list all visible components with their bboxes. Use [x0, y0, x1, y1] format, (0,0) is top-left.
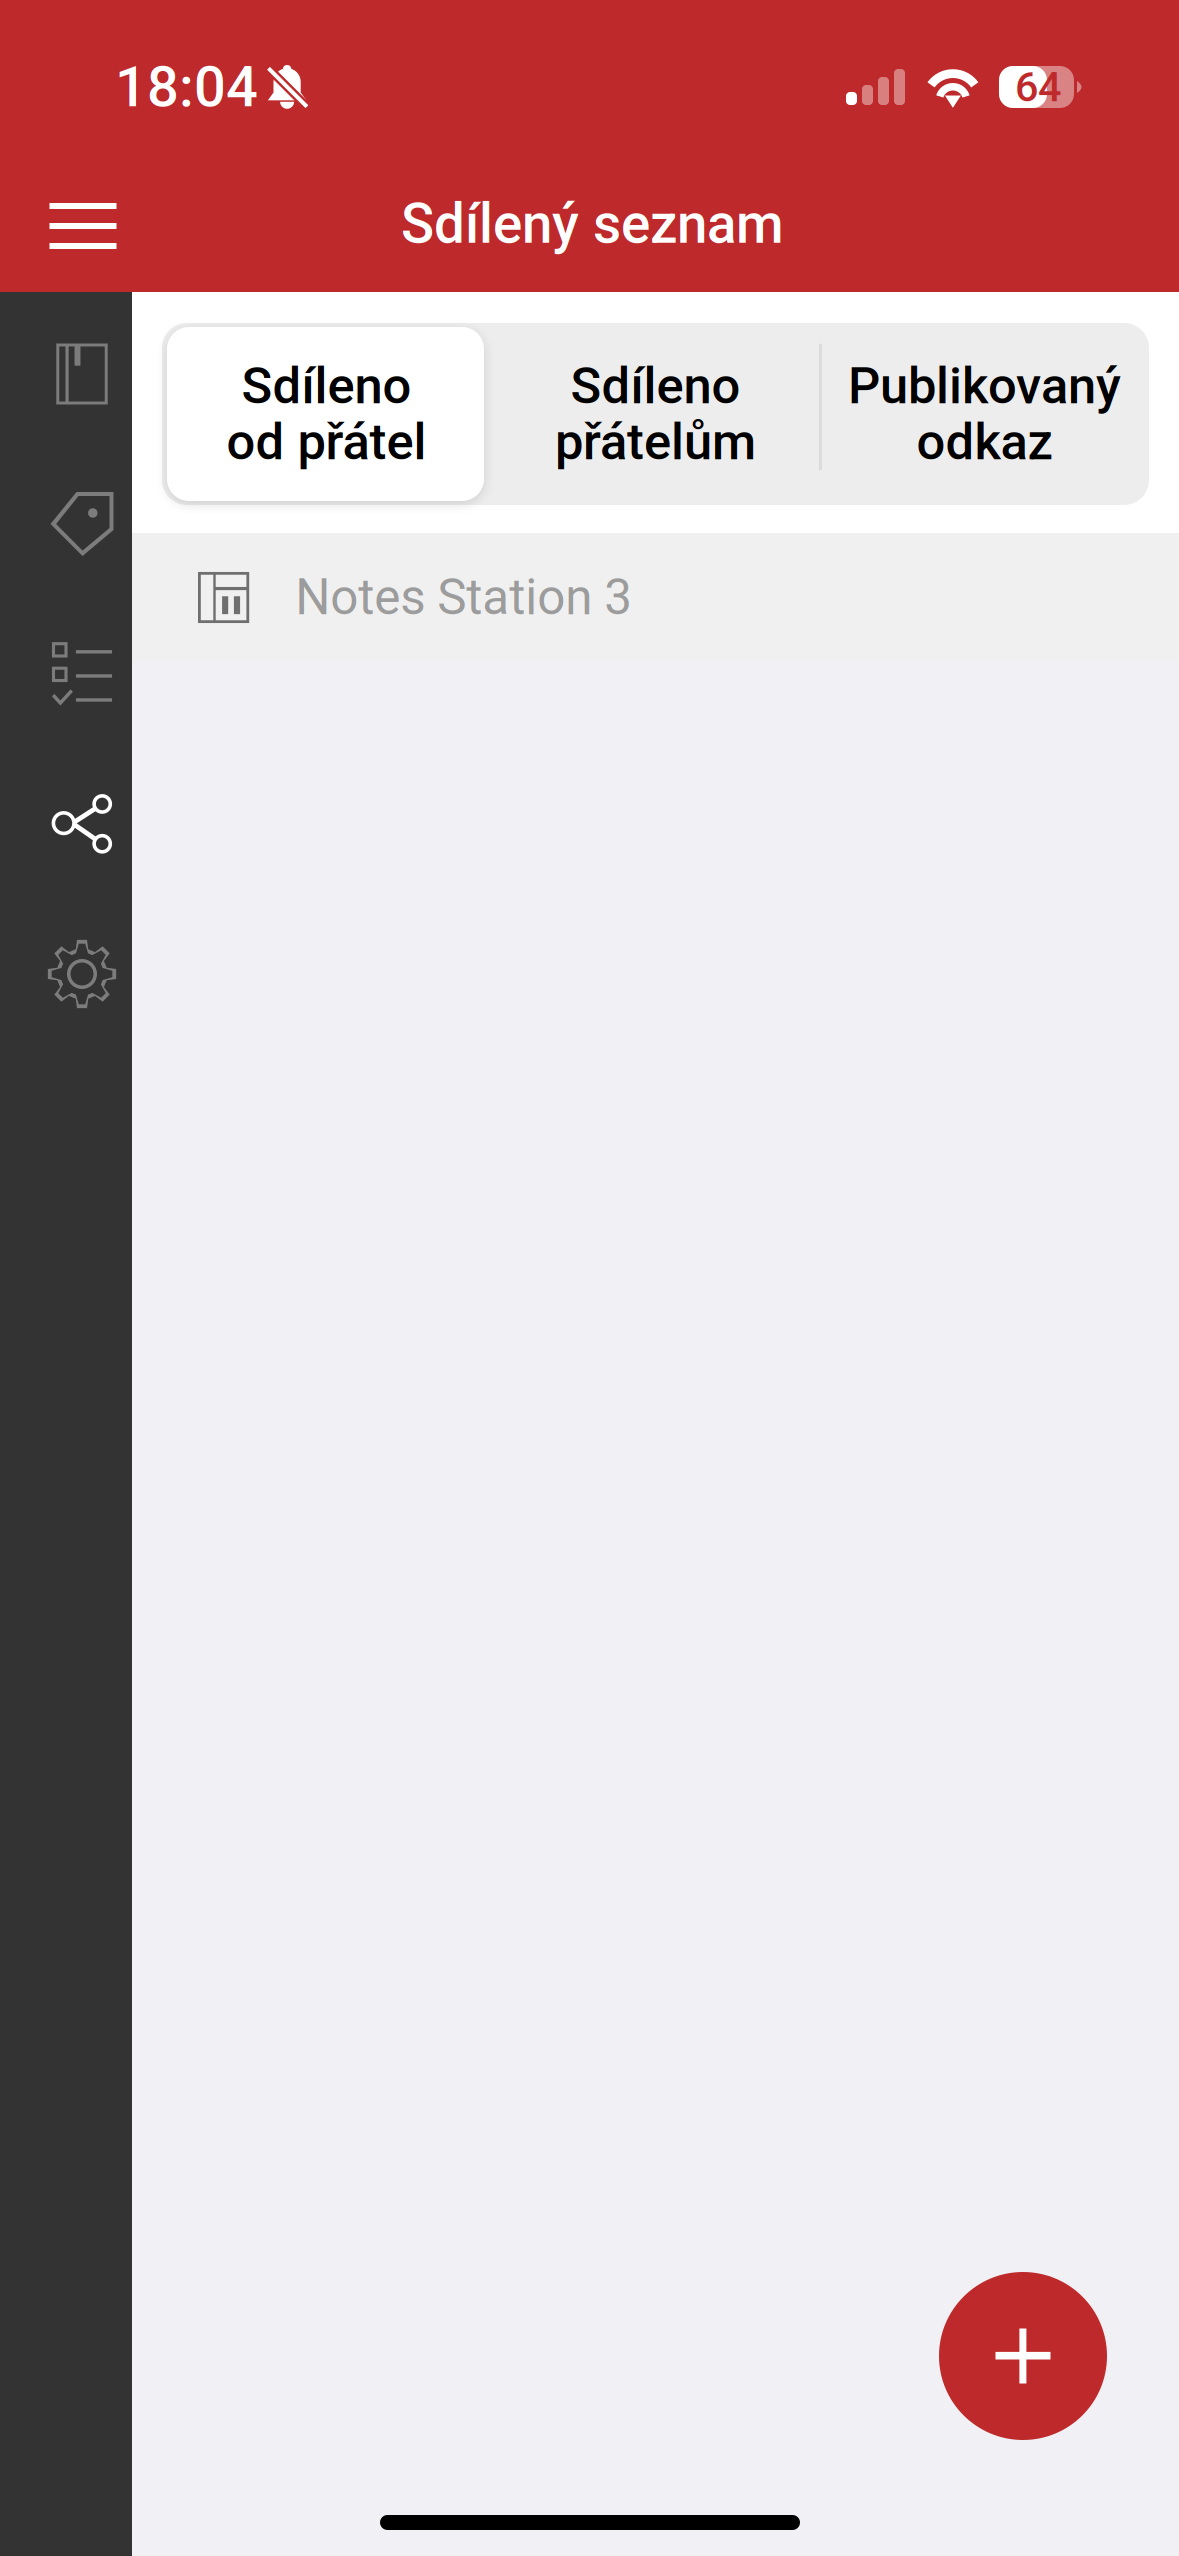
staticText: 18:04	[115, 54, 258, 120]
button[interactable]: Tags	[0, 449, 132, 599]
button[interactable]: Add	[939, 2272, 1107, 2440]
button[interactable]: Notebooks	[0, 299, 132, 449]
staticText: 64	[1015, 63, 1061, 111]
button[interactable]: Publikovaný	[820, 323, 1149, 505]
staticText: od přátel	[226, 412, 426, 472]
button[interactable]: Settings	[0, 899, 132, 1049]
button[interactable]: To-do lists	[0, 599, 132, 749]
button[interactable]: Menu	[16, 171, 150, 281]
button[interactable]: Shared	[0, 749, 132, 899]
staticText: Sdíleno	[241, 356, 411, 416]
staticText: Notes Station 3	[295, 569, 632, 626]
staticText: odkaz	[916, 412, 1052, 472]
staticText: přátelům	[555, 412, 756, 472]
button[interactable]: Sdíleno	[162, 323, 491, 505]
staticText: Sdílený seznam	[401, 192, 784, 256]
staticText: Publikovaný	[848, 356, 1121, 416]
staticText: Sdíleno	[570, 356, 740, 416]
button[interactable]: Sdíleno	[491, 323, 820, 505]
